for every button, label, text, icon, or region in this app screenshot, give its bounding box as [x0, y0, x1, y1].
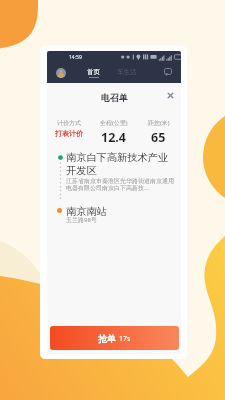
staticText: 65 [151, 129, 166, 146]
staticText: 首页 [87, 68, 100, 76]
staticText: 抢单 [98, 333, 116, 344]
staticText: 距您(米) [148, 119, 170, 127]
button[interactable]: Messages [164, 68, 172, 76]
staticText: 12.4 [101, 129, 126, 146]
staticText: 全程(公里) [100, 119, 128, 127]
staticText: 计价方式 [57, 119, 81, 127]
staticText: 17s [119, 334, 131, 344]
button[interactable]: 车生活 [117, 68, 137, 76]
button[interactable]: 抢单 [50, 326, 179, 350]
staticText: 电召单 [101, 92, 128, 103]
button[interactable]: 首页 [87, 68, 100, 78]
staticText: 14:59 [69, 54, 82, 61]
staticText: 打表计价 [55, 129, 83, 138]
button[interactable]: Profile [56, 68, 66, 78]
staticText: 江苏省南京市秦淮区光华路街道南京通用电器有限公司南京白下高新技... [66, 177, 174, 192]
staticText: 南京白下高新技术产业开发区 [66, 151, 174, 177]
staticText: 南京南站 [66, 205, 107, 218]
staticText: 玉兰路98号 [66, 216, 97, 224]
button[interactable]: Close [165, 90, 176, 101]
